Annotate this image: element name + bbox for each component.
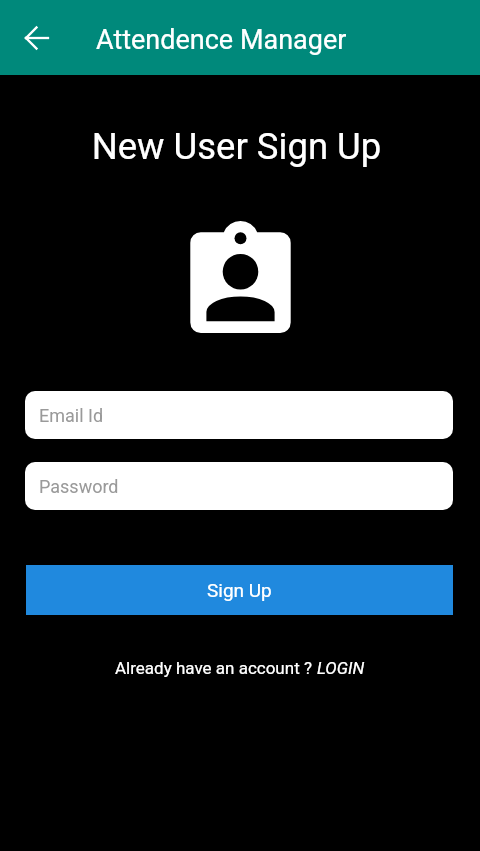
staticText: Password: [39, 476, 119, 497]
button[interactable]: Email Id: [25, 391, 453, 439]
staticText: New User Sign Up: [0, 125, 473, 168]
staticText: Email Id: [39, 405, 104, 426]
staticText: Sign Up: [207, 579, 272, 601]
staticText: Attendence Manager: [96, 24, 347, 56]
staticText: Already have an account ?: [115, 658, 317, 678]
button[interactable]: Sign Up: [26, 565, 453, 615]
button[interactable]: Password: [25, 462, 453, 510]
button[interactable]: Back: [13, 14, 61, 62]
staticText: LOGIN: [317, 658, 365, 678]
button[interactable]: LOGIN: [317, 658, 365, 678]
